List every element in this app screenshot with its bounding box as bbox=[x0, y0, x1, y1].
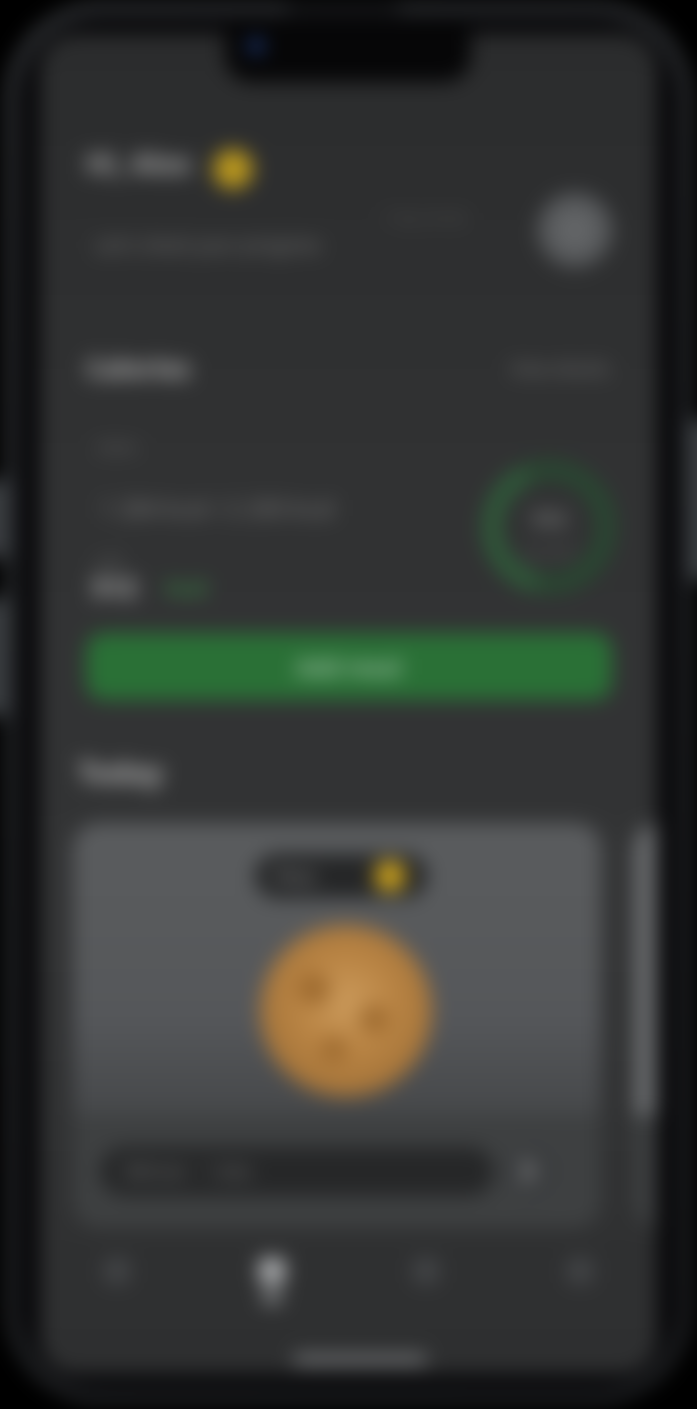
staticText: Calories bbox=[86, 350, 191, 385]
button[interactable]: 560 kcal · 1 slice bbox=[100, 1147, 494, 1196]
button[interactable]: Pizza bbox=[73, 823, 601, 1228]
staticText: 512 bbox=[92, 569, 137, 604]
staticText: Left bbox=[95, 551, 122, 571]
button[interactable] bbox=[504, 1146, 554, 1196]
staticText: Today bbox=[78, 752, 164, 791]
button[interactable]: Pizza bbox=[255, 854, 427, 898]
button[interactable]: Add meal bbox=[86, 633, 612, 700]
staticText: Hi, Alex bbox=[86, 144, 192, 182]
staticText: 1 284 kcal / 2 200 kcal bbox=[100, 492, 335, 523]
staticText: Add meal bbox=[296, 651, 402, 682]
button[interactable] bbox=[537, 192, 613, 268]
staticText: 512 bbox=[533, 506, 566, 532]
button[interactable] bbox=[259, 1258, 285, 1284]
staticText: kcal bbox=[166, 574, 207, 601]
